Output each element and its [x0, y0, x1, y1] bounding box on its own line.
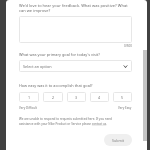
- button[interactable]: 1: [19, 92, 39, 102]
- staticText: 4: [98, 95, 101, 100]
- button[interactable]: Select an option: [19, 60, 132, 72]
- staticText: 3: [75, 95, 78, 100]
- staticText: We are unable to respond to requests sub…: [19, 117, 115, 126]
- button[interactable]: 3: [67, 92, 86, 102]
- staticText: 5: [121, 95, 124, 100]
- staticText: 1: [28, 95, 31, 100]
- staticText: Very Easy: [118, 106, 132, 110]
- staticText: Select an option: [23, 64, 52, 69]
- staticText: Submit: [112, 138, 124, 143]
- button[interactable]: Feedback comment field: [19, 16, 132, 43]
- button[interactable]: 4: [90, 92, 109, 102]
- staticText: 0/500: [19, 44, 132, 48]
- other: Open options: [124, 65, 127, 68]
- staticText: How easy was it to accomplish that goal?: [19, 83, 93, 88]
- staticText: Very Difficult: [19, 106, 37, 110]
- staticText: What was your primary goal for today's v…: [19, 52, 100, 57]
- button[interactable]: 5: [113, 92, 132, 102]
- staticText: We'd love to hear your feedback. What wa…: [19, 3, 132, 13]
- staticText: 2: [52, 95, 55, 100]
- button[interactable]: Submit: [104, 134, 132, 146]
- button[interactable]: 2: [43, 92, 63, 102]
